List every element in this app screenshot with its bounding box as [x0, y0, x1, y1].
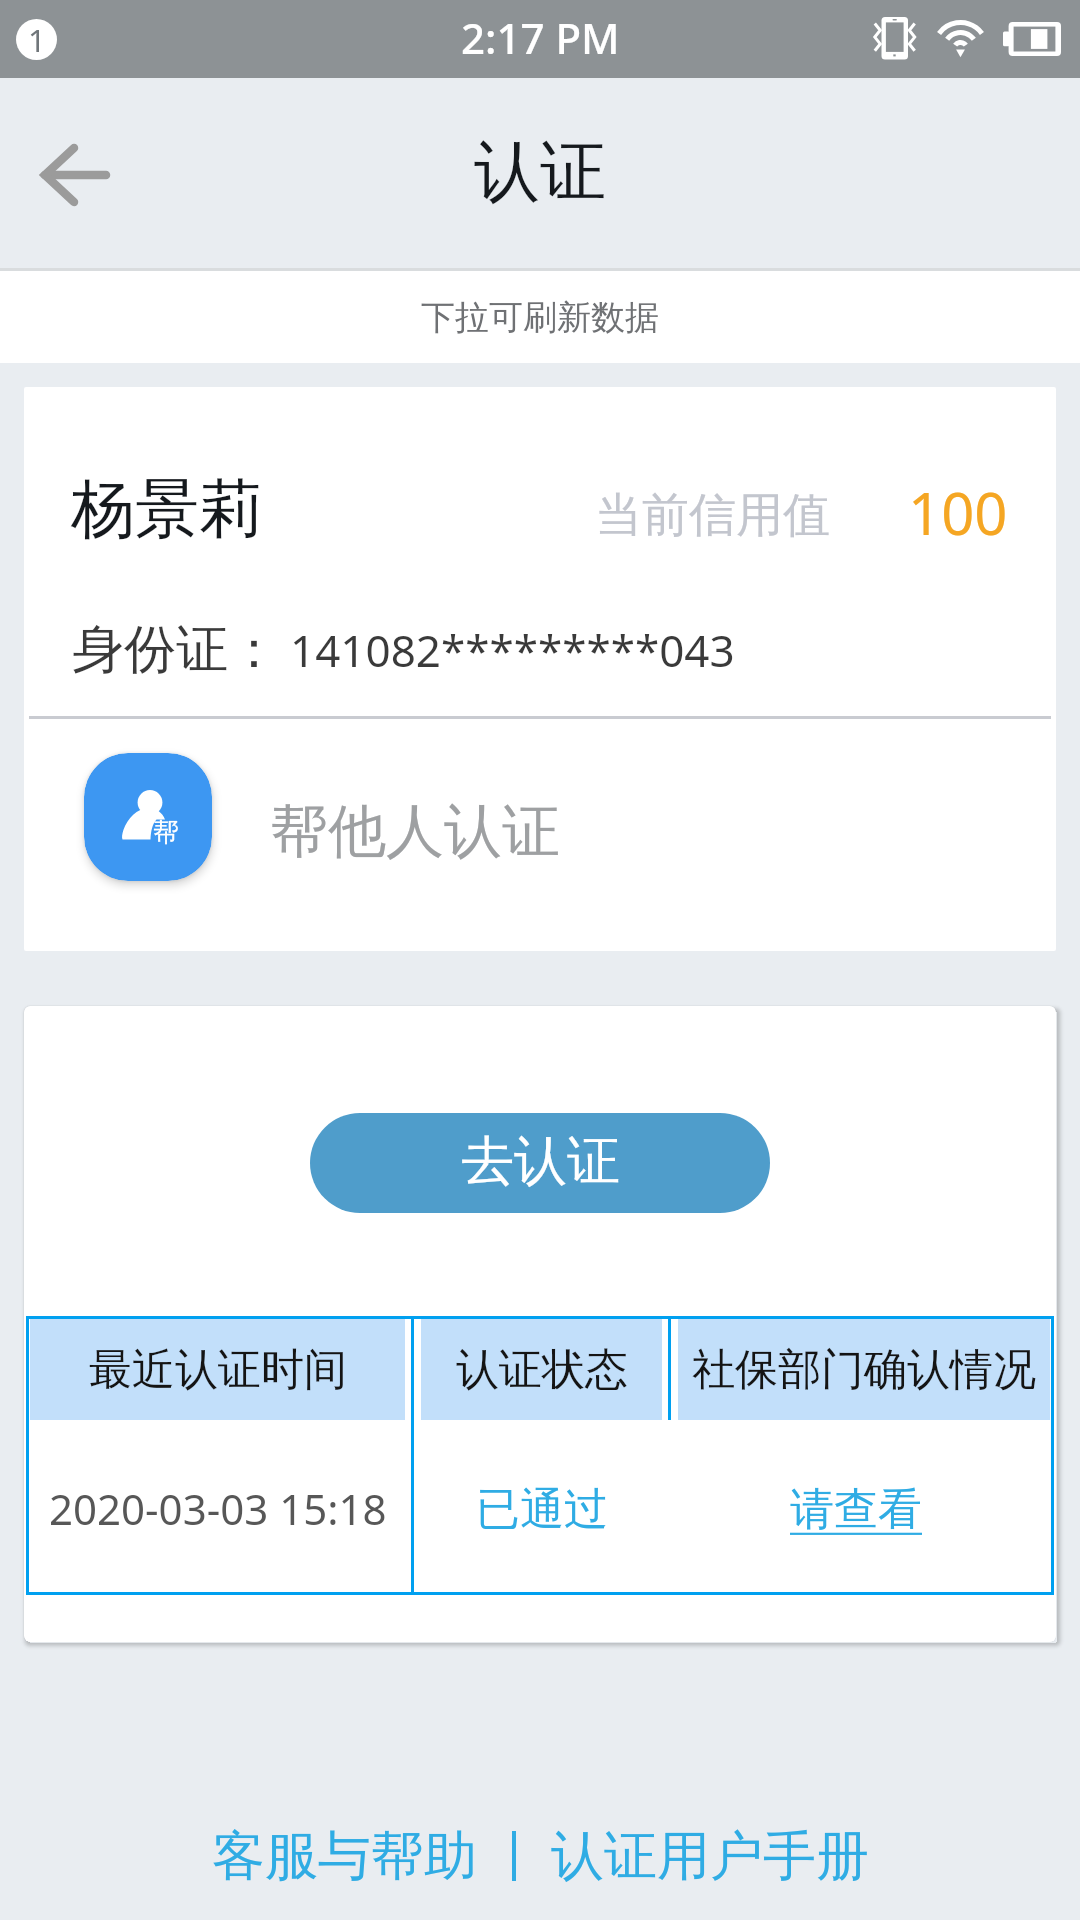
button[interactable]: 去认证 — [310, 1113, 770, 1213]
staticText: 2:17 PM — [461, 9, 620, 66]
staticText: 当前信用值 — [595, 486, 830, 545]
staticText: 已通过 — [476, 1482, 608, 1537]
staticText: 去认证 — [461, 1128, 620, 1195]
staticText: 下拉可刷新数据 — [421, 296, 659, 339]
button[interactable]: 客服与帮助 — [212, 1823, 477, 1890]
staticText: 认证状态 — [456, 1343, 628, 1397]
button[interactable]: 认证用户手册 — [551, 1823, 869, 1890]
staticText: 身份证： — [72, 617, 280, 683]
staticText: 帮 — [153, 816, 179, 849]
staticText: 请查看 — [790, 1482, 922, 1537]
button[interactable]: Back — [0, 101, 148, 249]
staticText: 帮他人认证 — [270, 795, 560, 868]
staticText: 杨景莉 — [71, 469, 263, 550]
staticText: 100 — [908, 473, 1008, 552]
staticText: 1 — [28, 19, 46, 60]
staticText: 2020-03-03 15:18 — [49, 1480, 387, 1537]
button[interactable]: 帮 — [24, 719, 1056, 951]
button[interactable]: 请查看 — [790, 1480, 922, 1535]
staticText: 141082*********043 — [290, 620, 735, 680]
staticText: 认证 — [474, 130, 606, 213]
staticText: 社保部门确认情况 — [692, 1343, 1036, 1397]
staticText: 最近认证时间 — [89, 1343, 347, 1397]
